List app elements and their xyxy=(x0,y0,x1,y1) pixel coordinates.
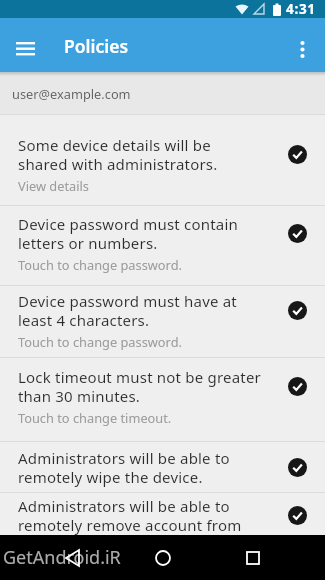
button[interactable]: Some device details will be shared with … xyxy=(0,115,325,205)
button[interactable]: Device password must contain letters or … xyxy=(0,206,325,285)
button[interactable]: Administrators will be able to remotely … xyxy=(0,493,325,535)
button[interactable] xyxy=(10,32,40,62)
button[interactable] xyxy=(43,535,103,580)
staticText: Administrators will be able to remotely … xyxy=(18,496,242,535)
button[interactable] xyxy=(133,535,193,580)
staticText: Device password must have at least 4 cha… xyxy=(18,291,237,330)
staticText: Device password must contain letters or … xyxy=(18,214,238,253)
button[interactable]: Lock timeout must not be greater than 30… xyxy=(0,358,325,441)
staticText: Lock timeout must not be greater than 30… xyxy=(18,367,261,406)
staticText: user@example.com xyxy=(12,85,131,102)
staticText: Some device details will be shared with … xyxy=(18,135,218,174)
button[interactable] xyxy=(291,38,313,60)
staticText: Administrators will be able to remotely … xyxy=(18,448,230,487)
button[interactable]: user@example.com xyxy=(0,72,325,114)
staticText: Touch to change timeout. xyxy=(18,409,172,426)
staticText: Touch to change password. xyxy=(18,333,182,350)
staticText: GetAndroid.iR xyxy=(3,545,121,570)
staticText: Policies xyxy=(64,34,129,58)
button[interactable]: Administrators will be able to remotely … xyxy=(0,442,325,492)
staticText: 4:31 xyxy=(286,0,316,18)
button[interactable] xyxy=(223,535,283,580)
button[interactable]: Device password must have at least 4 cha… xyxy=(0,286,325,357)
staticText: Touch to change password. xyxy=(18,256,182,273)
staticText: View details xyxy=(18,177,89,194)
